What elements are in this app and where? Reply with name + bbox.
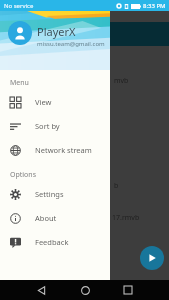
button[interactable]: Recent apps bbox=[119, 281, 137, 299]
button[interactable]: Play bbox=[140, 246, 164, 270]
staticText: mvb bbox=[114, 76, 129, 86]
staticText: Feedback bbox=[35, 237, 69, 247]
button[interactable]: Network stream bbox=[0, 138, 110, 162]
button[interactable]: Back bbox=[32, 281, 50, 299]
staticText: Network stream bbox=[35, 145, 92, 155]
staticText: b bbox=[114, 181, 119, 191]
staticText: About bbox=[35, 213, 57, 223]
staticText: 8:33 PM bbox=[143, 2, 166, 10]
staticText: missu.team@gmail.com bbox=[37, 40, 105, 48]
staticText: Menu bbox=[10, 78, 29, 88]
staticText: No service bbox=[4, 2, 34, 10]
staticText: Settings bbox=[35, 189, 64, 199]
staticText: 17.rmvb bbox=[112, 213, 140, 223]
button[interactable]: Feedback bbox=[0, 230, 110, 254]
button[interactable]: Sort by bbox=[0, 114, 110, 138]
button[interactable]: Settings bbox=[0, 182, 110, 206]
staticText: Options bbox=[10, 170, 37, 180]
staticText: View bbox=[35, 97, 52, 107]
button[interactable]: Profile photo bbox=[8, 21, 32, 45]
button[interactable]: Home bbox=[76, 281, 94, 299]
button[interactable]: About bbox=[0, 206, 110, 230]
staticText: PlayerX bbox=[37, 24, 76, 39]
staticText: Sort by bbox=[35, 121, 60, 131]
button[interactable]: View bbox=[0, 90, 110, 114]
